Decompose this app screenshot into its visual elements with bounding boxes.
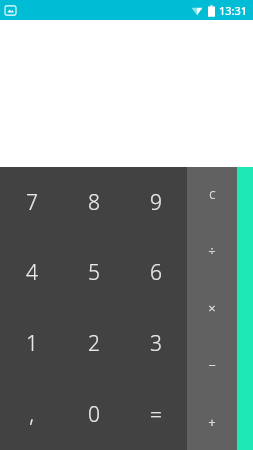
button[interactable]: 1 bbox=[0, 308, 63, 379]
staticText: C bbox=[209, 188, 216, 202]
button[interactable]: 2 bbox=[63, 308, 125, 379]
staticText: + bbox=[208, 413, 216, 431]
staticText: = bbox=[150, 400, 162, 429]
button[interactable]: 0 bbox=[63, 379, 125, 450]
staticText: 0 bbox=[88, 400, 100, 429]
staticText: − bbox=[208, 356, 216, 374]
staticText: 8 bbox=[88, 188, 100, 217]
button[interactable]: ÷ bbox=[187, 223, 237, 279]
button[interactable]: , bbox=[0, 379, 63, 450]
button[interactable]: 8 bbox=[63, 167, 125, 237]
staticText: 9 bbox=[150, 188, 162, 217]
staticText: , bbox=[29, 400, 34, 429]
button[interactable]: 3 bbox=[125, 308, 187, 379]
staticText: 2 bbox=[88, 329, 100, 358]
button[interactable]: + bbox=[187, 393, 237, 450]
button[interactable]: 7 bbox=[0, 167, 63, 237]
button[interactable]: 6 bbox=[125, 237, 187, 308]
button[interactable]: = bbox=[125, 379, 187, 450]
staticText: ÷ bbox=[208, 242, 216, 260]
staticText: 6 bbox=[150, 258, 162, 287]
button[interactable]: − bbox=[187, 336, 237, 393]
button[interactable]: × bbox=[187, 279, 237, 336]
button[interactable]: C bbox=[187, 167, 237, 223]
staticText: 1 bbox=[26, 329, 38, 358]
staticText: 5 bbox=[88, 258, 100, 287]
staticText: 13:31 bbox=[219, 3, 248, 18]
button[interactable]: 4 bbox=[0, 237, 63, 308]
staticText: 7 bbox=[26, 188, 38, 217]
staticText: 3 bbox=[150, 329, 162, 358]
staticText: 4 bbox=[26, 258, 38, 287]
staticText: × bbox=[208, 299, 216, 317]
button[interactable]: 5 bbox=[63, 237, 125, 308]
button[interactable]: 9 bbox=[125, 167, 187, 237]
